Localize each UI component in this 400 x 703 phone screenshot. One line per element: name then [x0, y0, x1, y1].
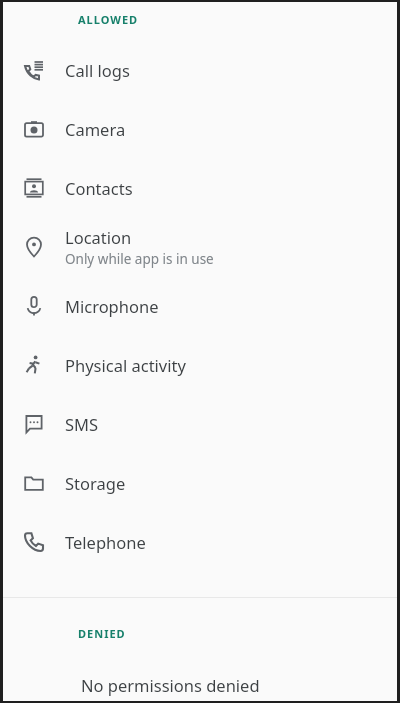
button[interactable]: Telephone: [3, 512, 397, 571]
button[interactable]: Location: [3, 217, 397, 276]
button[interactable]: Contacts: [3, 158, 397, 217]
button[interactable]: Microphone: [3, 276, 397, 335]
staticText: Camera: [65, 118, 126, 140]
staticText: ALLOWED: [78, 12, 139, 27]
button[interactable]: Call logs: [3, 40, 397, 99]
staticText: No permissions denied: [81, 674, 260, 696]
staticText: DENIED: [78, 626, 126, 641]
staticText: Physical activity: [65, 354, 186, 376]
staticText: Only while app is in use: [65, 250, 214, 268]
staticText: Storage: [65, 472, 126, 494]
button[interactable]: SMS: [3, 394, 397, 453]
staticText: Call logs: [65, 59, 130, 81]
staticText: SMS: [65, 413, 99, 435]
staticText: Contacts: [65, 177, 133, 199]
button[interactable]: Physical activity: [3, 335, 397, 394]
button[interactable]: Camera: [3, 99, 397, 158]
staticText: Telephone: [65, 531, 146, 553]
staticText: Location: [65, 226, 132, 248]
button[interactable]: No permissions denied: [3, 668, 397, 701]
staticText: Microphone: [65, 295, 159, 317]
button[interactable]: Storage: [3, 453, 397, 512]
